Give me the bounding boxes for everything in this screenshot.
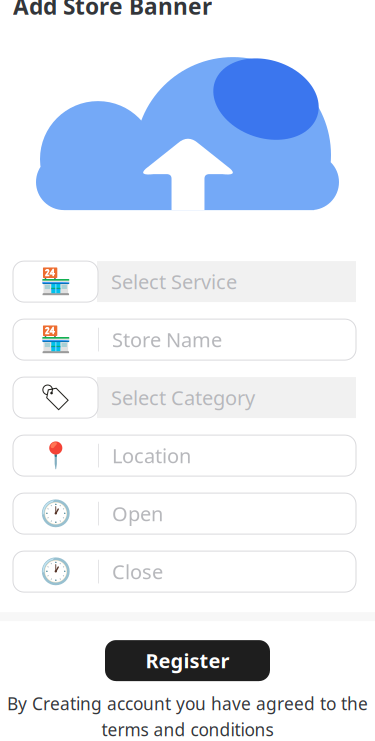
button[interactable]: 🕐 bbox=[13, 551, 356, 592]
button[interactable]: 📍 bbox=[13, 435, 356, 476]
staticText: Open bbox=[112, 500, 163, 527]
staticText: 🏪 bbox=[39, 325, 71, 354]
staticText: terms and conditions bbox=[101, 718, 273, 741]
staticText: 🕐 bbox=[39, 557, 71, 586]
staticText: Select Service bbox=[111, 268, 237, 295]
staticText: 🏷 bbox=[39, 383, 71, 412]
staticText: Close bbox=[112, 558, 163, 585]
staticText: Store Name bbox=[112, 326, 222, 353]
staticText: 🏪 bbox=[39, 267, 71, 296]
staticText: Location bbox=[112, 442, 191, 469]
staticText: 📍 bbox=[39, 441, 71, 470]
staticText: Select Category bbox=[111, 384, 255, 411]
staticText: 🕐 bbox=[39, 499, 71, 528]
button[interactable]: 🏪 bbox=[13, 261, 356, 302]
staticText: Register bbox=[145, 647, 229, 674]
button[interactable]: 🏪 bbox=[13, 319, 356, 360]
staticText: By Creating account you have agreed to t… bbox=[7, 692, 368, 715]
button[interactable]: 🕐 bbox=[13, 493, 356, 534]
button[interactable]: 🏷 bbox=[13, 377, 356, 418]
button[interactable]: Register bbox=[105, 640, 270, 681]
staticText: Add Store Banner bbox=[13, 0, 212, 21]
